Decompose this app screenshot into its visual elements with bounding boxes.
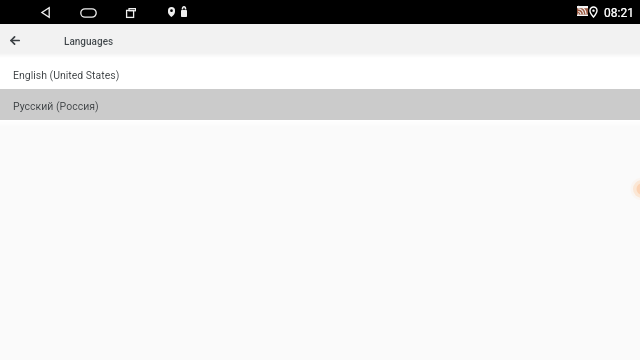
button[interactable]: Location status — [590, 7, 597, 17]
staticText: Русский (Россия) — [13, 100, 99, 112]
button[interactable]: Location — [168, 7, 175, 17]
staticText: 08:21 — [604, 6, 634, 20]
staticText: English (United States) — [13, 69, 120, 81]
button[interactable]: Русский (Россия) — [0, 89, 640, 120]
staticText: Languages — [64, 36, 114, 48]
button[interactable]: Lock — [181, 6, 187, 17]
button[interactable]: Back — [41, 7, 50, 18]
button[interactable]: Navigate up — [10, 36, 20, 45]
button[interactable]: Recents — [126, 8, 136, 18]
button[interactable]: Home — [80, 8, 97, 18]
button[interactable]: Cast — [577, 6, 588, 16]
button[interactable]: English (United States) — [0, 58, 640, 89]
